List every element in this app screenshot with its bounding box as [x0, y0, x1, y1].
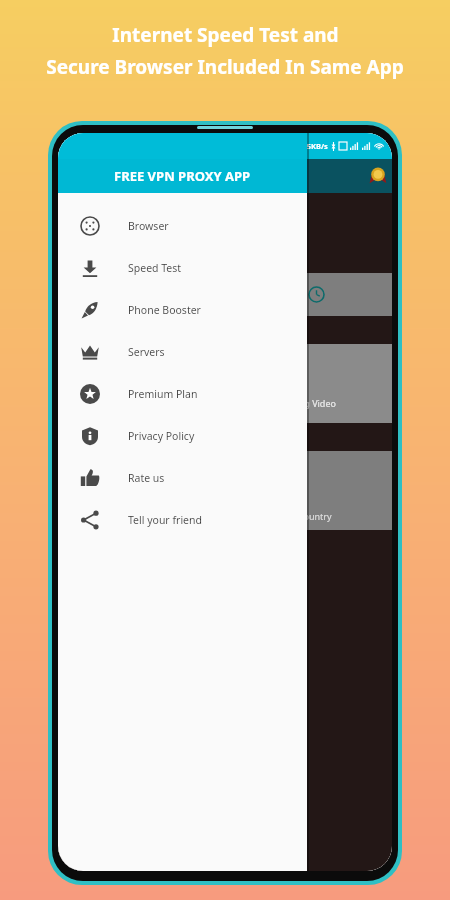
- other: Premium Plan: [80, 384, 100, 404]
- button[interactable]: Tell your friend: [58, 499, 307, 541]
- button[interactable]: Speed Test: [58, 247, 307, 289]
- button[interactable]: Servers: [58, 331, 307, 373]
- other: Rate us: [80, 468, 100, 488]
- other: Speed Test: [80, 258, 100, 278]
- staticText: Rate us: [128, 471, 165, 485]
- staticText: Phone Booster: [128, 303, 201, 317]
- other: Phone Booster: [80, 300, 100, 320]
- staticText: Servers: [128, 345, 165, 359]
- button[interactable]: Privacy Policy: [58, 415, 307, 457]
- button[interactable]: Watching Video: [258, 344, 392, 423]
- staticText: Choose Country: [264, 510, 332, 522]
- staticText: Tell your friend: [128, 513, 202, 527]
- button[interactable]: Choose Country: [258, 451, 392, 530]
- other: Tell your friend: [80, 510, 100, 530]
- button[interactable]: Premium Plan: [58, 373, 307, 415]
- staticText: Premium Plan: [128, 387, 198, 401]
- button[interactable]: Phone Booster: [58, 289, 307, 331]
- staticText: 20.5KB/s: [296, 141, 328, 151]
- staticText: Secure Browser Included In Same App: [46, 54, 404, 80]
- button[interactable]: [258, 273, 392, 316]
- button[interactable]: Browser: [58, 205, 307, 247]
- staticText: Speed Test: [128, 261, 182, 275]
- staticText: Watching Video: [270, 397, 336, 409]
- staticText: Browser: [128, 219, 169, 233]
- other: Servers: [80, 342, 100, 362]
- button[interactable]: Rate us: [58, 457, 307, 499]
- staticText: Privacy Policy: [128, 429, 195, 443]
- other: Browser: [80, 216, 100, 236]
- other: Privacy Policy: [80, 426, 100, 446]
- staticText: Internet Speed Test and: [112, 22, 339, 48]
- staticText: FREE VPN PROXY APP: [114, 167, 251, 185]
